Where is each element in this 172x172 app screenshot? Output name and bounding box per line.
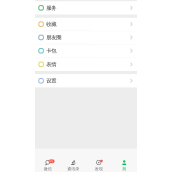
staticText: 微信 [44,166,52,171]
button[interactable]: 发现 [86,149,111,172]
staticText: 卡包 [46,47,56,54]
staticText: 设置 [46,77,56,84]
button[interactable]: 通讯录 [60,149,86,172]
button[interactable]: 表情 [35,58,137,71]
button[interactable]: 朋友圈 [35,31,137,44]
staticText: 66 [49,159,53,163]
staticText: 我 [122,166,126,171]
staticText: 服务 [46,5,56,11]
button[interactable]: 设置 [35,74,137,87]
button[interactable]: 我 [111,149,137,172]
staticText: 表情 [46,61,56,68]
button[interactable]: 服务 [35,1,137,14]
button[interactable]: 66 [35,149,60,172]
staticText: 发现 [95,166,103,171]
button[interactable]: 收藏 [35,18,137,31]
button[interactable]: 卡包 [35,44,137,58]
staticText: 收藏 [46,21,56,27]
staticText: 朋友圈 [46,34,61,41]
staticText: 通讯录 [67,166,79,171]
